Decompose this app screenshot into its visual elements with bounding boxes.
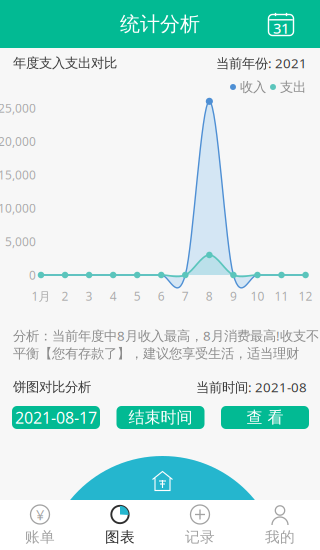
staticText: 0 — [29, 267, 36, 283]
button[interactable]: 2021-08-17 — [12, 406, 100, 429]
staticText: 平衡【您有存款了】，建议您享受生活，适当理财 — [13, 345, 299, 362]
staticText: ¥ — [36, 505, 44, 524]
staticText: 统计分析 — [120, 12, 200, 36]
button[interactable]: ¥ — [0, 500, 80, 550]
button[interactable]: 结束时间 — [116, 406, 204, 429]
staticText: 3 — [86, 288, 93, 304]
staticText: 1月 — [31, 288, 50, 304]
staticText: 25,000 — [0, 100, 36, 116]
staticText: 6 — [158, 288, 165, 304]
staticText: 4 — [110, 288, 117, 304]
staticText: 20,000 — [0, 133, 36, 149]
button[interactable]: 记录 — [160, 500, 240, 550]
staticText: 12 — [299, 288, 313, 304]
staticText: 账单 — [25, 528, 55, 546]
staticText: 5,000 — [5, 234, 36, 249]
staticText: 当前时间: 2021-08 — [196, 378, 307, 396]
button[interactable]: 我的 — [240, 500, 320, 550]
button[interactable]: 查 看 — [221, 406, 309, 429]
staticText: 图表 — [105, 528, 135, 546]
staticText: 我的 — [265, 528, 295, 546]
button[interactable]: Calendar — [268, 11, 294, 36]
staticText: 查 看 — [246, 408, 283, 427]
staticText: 结束时间 — [128, 408, 192, 427]
staticText: 年度支入支出对比 — [13, 55, 117, 71]
staticText: 2 — [61, 288, 68, 304]
staticText: 饼图对比分析 — [13, 379, 91, 395]
staticText: 记录 — [185, 528, 215, 546]
staticText: 10 — [250, 288, 264, 304]
button[interactable]: 图表 — [80, 500, 160, 550]
staticText: 7 — [182, 288, 189, 304]
staticText: 支出 — [280, 79, 306, 95]
staticText: 10,000 — [0, 200, 36, 216]
staticText: 5 — [134, 288, 141, 304]
staticText: 11 — [274, 288, 288, 304]
staticText: 分析：当前年度中8月收入最高，8月消费最高!收支不 — [13, 327, 319, 344]
staticText: 31 — [273, 18, 289, 38]
staticText: 收入 — [240, 79, 266, 95]
staticText: 当前年份: 2021 — [216, 54, 307, 72]
staticText: 9 — [230, 288, 237, 304]
staticText: 2021-08-17 — [15, 407, 97, 428]
staticText: 8 — [206, 288, 213, 304]
staticText: 15,000 — [0, 167, 36, 183]
